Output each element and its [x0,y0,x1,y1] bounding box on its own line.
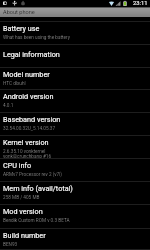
button[interactable]: Kernel version [0,136,150,159]
staticText: Legal information [3,50,60,58]
staticText: 258 MB / 405 MB [3,195,40,201]
staticText: What has been using the battery [3,35,70,41]
button[interactable]: Mem info (avail/total) [0,182,150,205]
button[interactable]: Build number [0,229,150,250]
button[interactable]: CPU info [0,159,150,182]
staticText: HTC dlxuhl [3,81,26,87]
staticText: Model number [3,70,50,78]
staticText: Kernel version [3,138,49,146]
staticText: 4.0.1 [3,103,14,109]
button[interactable]: Battery use [0,22,150,45]
staticText: Battery use [3,24,40,32]
button[interactable]: About phone [0,7,150,17]
staticText: 32.54.00.32U_5.14.05.37 [3,126,56,132]
staticText: BEN93 [3,242,18,248]
button[interactable]: Model number [0,68,150,90]
staticText: 23:11 [133,0,148,7]
button[interactable]: Legal information [0,45,150,68]
staticText: Build number [3,231,46,239]
staticText: About phone [3,9,35,16]
button[interactable]: Mod version [0,205,150,229]
staticText: Mod version [3,207,43,215]
button[interactable]: Baseband version [0,113,150,136]
staticText: CPU info [3,161,32,169]
staticText: Mem info (avail/total) [3,184,73,192]
staticText: Bendik Custom ROM v 0.3 BETA [3,218,70,224]
staticText: Android version [3,92,54,100]
staticText: ARMv7 Processor rev 2 (v7l) [3,172,62,178]
staticText: 2.6.35.10 vonkternel vonk@crunchbang #16 [3,149,52,159]
staticText: Baseband version [3,115,61,123]
button[interactable]: Android version [0,90,150,113]
